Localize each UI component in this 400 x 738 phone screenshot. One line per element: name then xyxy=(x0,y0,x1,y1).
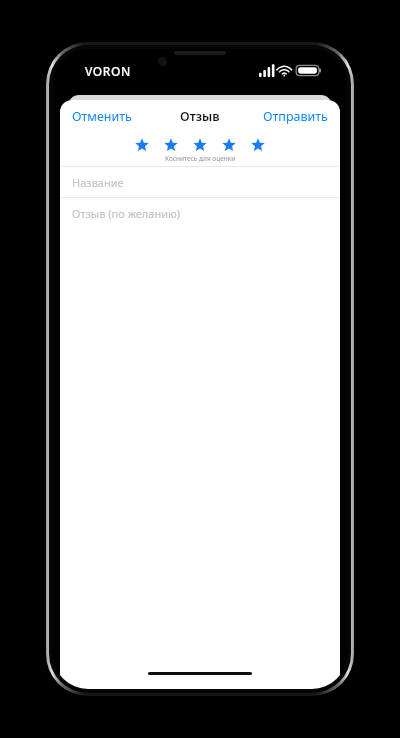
staticText: Отзыв xyxy=(180,108,220,125)
staticText: Коснитесь для оценки xyxy=(165,154,236,163)
staticText: Отправить xyxy=(263,108,328,125)
button[interactable]: Название xyxy=(60,167,340,197)
button[interactable]: Отзыв (по желанию) xyxy=(60,198,340,689)
staticText: Название xyxy=(72,175,124,190)
button[interactable]: Отменить xyxy=(60,102,142,131)
staticText: Отзыв (по желанию) xyxy=(72,206,181,221)
staticText: VORON xyxy=(85,63,131,79)
button[interactable]: Отправить xyxy=(253,102,340,131)
button[interactable]: Оценка 5 звёзд xyxy=(135,138,265,152)
staticText: Отменить xyxy=(72,108,132,125)
